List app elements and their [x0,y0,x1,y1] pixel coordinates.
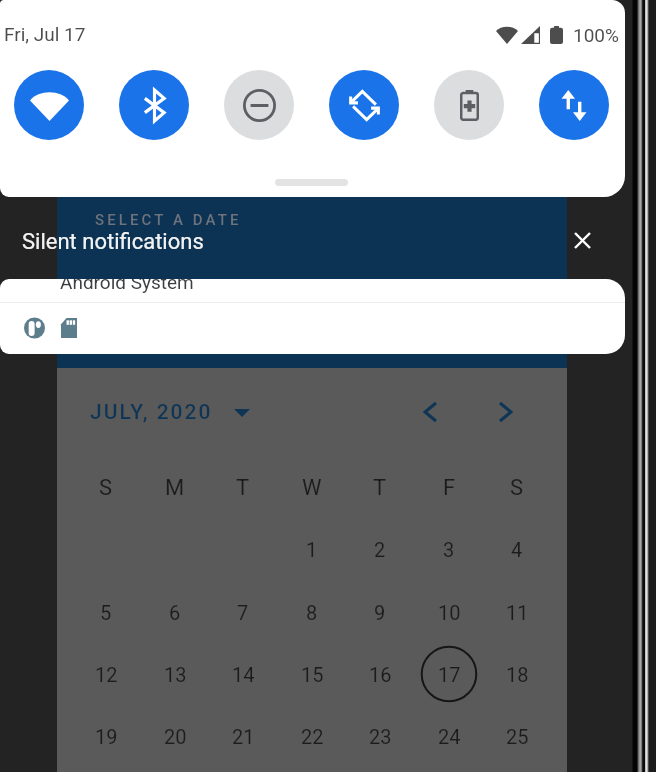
staticText: SELECT A DATE [95,211,242,229]
staticText: F [443,475,456,501]
staticText: 19 [95,725,118,748]
staticText: 17 [438,663,461,686]
button[interactable]: 14 [220,651,266,697]
button[interactable]: 1 [289,526,335,572]
button[interactable]: 20 [152,713,198,759]
button[interactable]: 10 [426,589,472,635]
button[interactable]: Battery saver [434,70,504,140]
button[interactable]: Auto-rotate [329,70,399,140]
button[interactable]: 5 [83,589,129,635]
button[interactable]: 6 [152,589,198,635]
staticText: 8 [306,601,318,624]
button[interactable]: Do not disturb [224,70,294,140]
staticText: Android System [60,279,194,293]
staticText: 5 [100,601,112,624]
button[interactable]: 3 [426,526,472,572]
button[interactable]: 9 [357,589,403,635]
staticText: 16 [369,663,392,686]
button[interactable]: 13 [152,651,198,697]
staticText: 14 [232,663,255,686]
button[interactable]: Bluetooth [119,70,189,140]
staticText: 12 [95,663,118,686]
staticText: Fri, Jul 17 [4,23,86,45]
button[interactable]: 25 [494,713,540,759]
button[interactable]: 23 [357,713,403,759]
staticText: JULY, 2020 [90,400,213,425]
button[interactable]: 16 [357,651,403,697]
staticText: 25 [506,725,529,748]
staticText: 2 [374,538,386,561]
staticText: 18 [506,663,529,686]
staticText: 23 [369,725,392,748]
staticText: T [236,475,250,501]
staticText: 3 [443,538,455,561]
staticText: W [302,475,322,501]
button[interactable]: 22 [289,713,335,759]
button[interactable]: 8 [289,589,335,635]
button[interactable]: 21 [220,713,266,759]
staticText: 15 [301,663,324,686]
staticText: S [99,475,113,501]
staticText: 20 [164,725,187,748]
button[interactable]: Previous month [413,395,447,429]
staticText: M [165,475,185,501]
button[interactable]: 24 [426,713,472,759]
staticText: Silent notifications [22,229,204,255]
staticText: 100% [573,24,619,46]
staticText: 11 [506,601,529,624]
button[interactable]: 11 [494,589,540,635]
button[interactable]: Mobile data [539,70,609,140]
button[interactable]: Next month [488,395,522,429]
staticText: 1 [306,538,318,561]
staticText: T [373,475,387,501]
staticText: 9 [374,601,386,624]
staticText: 7 [237,601,249,624]
button[interactable]: 15 [289,651,335,697]
staticText: 22 [301,725,324,748]
button[interactable]: 7 [220,589,266,635]
staticText: 13 [164,663,187,686]
button[interactable]: JULY, 2020 [90,400,250,425]
button[interactable]: 18 [494,651,540,697]
staticText: 24 [438,725,461,748]
button[interactable]: Wi-Fi [14,70,84,140]
button[interactable]: 4 [494,526,540,572]
staticText: S [510,475,524,501]
staticText: 10 [438,601,461,624]
staticText: 4 [511,538,523,561]
button[interactable]: 17 [426,651,472,697]
button[interactable]: Dismiss silent notifications [559,217,605,263]
staticText: 21 [232,725,255,748]
staticText: 6 [169,601,181,624]
button[interactable]: 2 [357,526,403,572]
button[interactable]: 12 [83,651,129,697]
button[interactable]: 19 [83,713,129,759]
button[interactable]: Android System [0,279,625,354]
